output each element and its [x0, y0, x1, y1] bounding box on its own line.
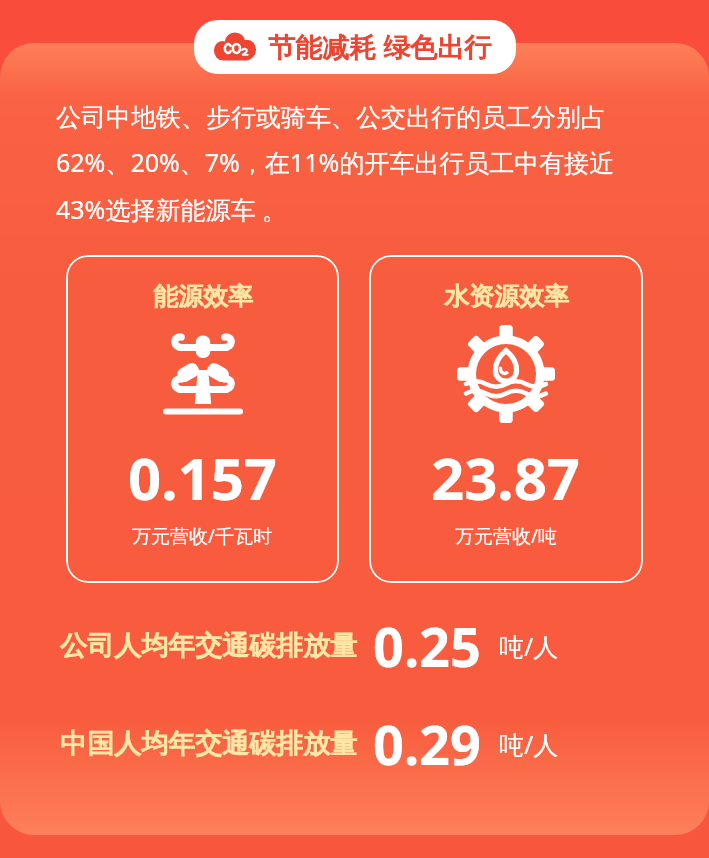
staticText: 中国人均年交通碳排放量: [60, 727, 357, 761]
other: Energy efficiency: [153, 324, 253, 424]
staticText: 水资源效率: [444, 281, 569, 312]
staticText: 公司中地铁、步行或骑车、公交出行的员工分别占62%、20%、7%，在11%的开车…: [56, 102, 653, 227]
staticText: 吨/人: [499, 727, 559, 761]
staticText: 吨/人: [499, 629, 559, 663]
staticText: 0.25: [373, 609, 481, 683]
staticText: 能源效率: [153, 281, 253, 312]
staticText: 万元营收/吨: [455, 523, 558, 549]
staticText: 0.29: [373, 707, 481, 781]
other: Water efficiency: [456, 324, 556, 424]
other: CO2: [214, 32, 256, 62]
staticText: 公司人均年交通碳排放量: [60, 629, 357, 663]
staticText: 节能减耗 绿色出行: [268, 28, 492, 65]
button[interactable]: CO2: [194, 20, 516, 74]
button[interactable]: 中国人均年交通碳排放量: [0, 707, 709, 781]
staticText: 23.87: [431, 438, 581, 517]
staticText: 0.157: [128, 438, 278, 517]
staticText: 万元营收/千瓦时: [132, 523, 273, 549]
button[interactable]: 公司人均年交通碳排放量: [0, 609, 709, 683]
button[interactable]: 能源效率: [66, 255, 339, 583]
button[interactable]: 水资源效率: [369, 255, 643, 583]
